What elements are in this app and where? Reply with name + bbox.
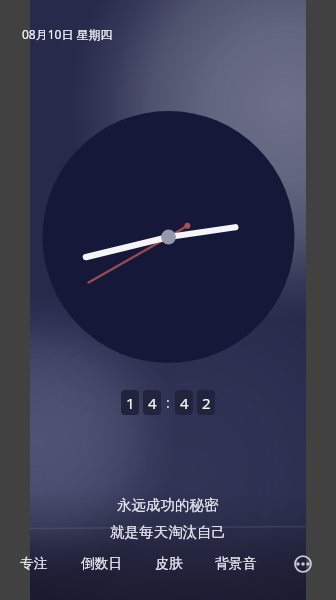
staticText: 1 [126, 393, 135, 413]
staticText: 就是每天淘汰自己 [110, 523, 226, 541]
staticText: 2 [202, 393, 211, 413]
staticText: 4 [180, 393, 189, 413]
staticText: 倒数日 [81, 555, 123, 572]
staticText: 背景音 [215, 555, 257, 572]
button[interactable]: 背景音 [202, 527, 269, 600]
staticText: : [166, 393, 170, 412]
button[interactable]: 皮肤 [135, 527, 202, 600]
button[interactable]: 专注 [0, 527, 68, 600]
button[interactable]: More options [269, 527, 336, 600]
staticText: 4 [148, 393, 157, 413]
button[interactable]: 倒数日 [68, 527, 135, 600]
staticText: 永远成功的秘密 [117, 496, 219, 514]
staticText: 皮肤 [155, 555, 183, 572]
staticText: 专注 [20, 555, 48, 572]
staticText: 08月10日 星期四 [22, 26, 113, 42]
